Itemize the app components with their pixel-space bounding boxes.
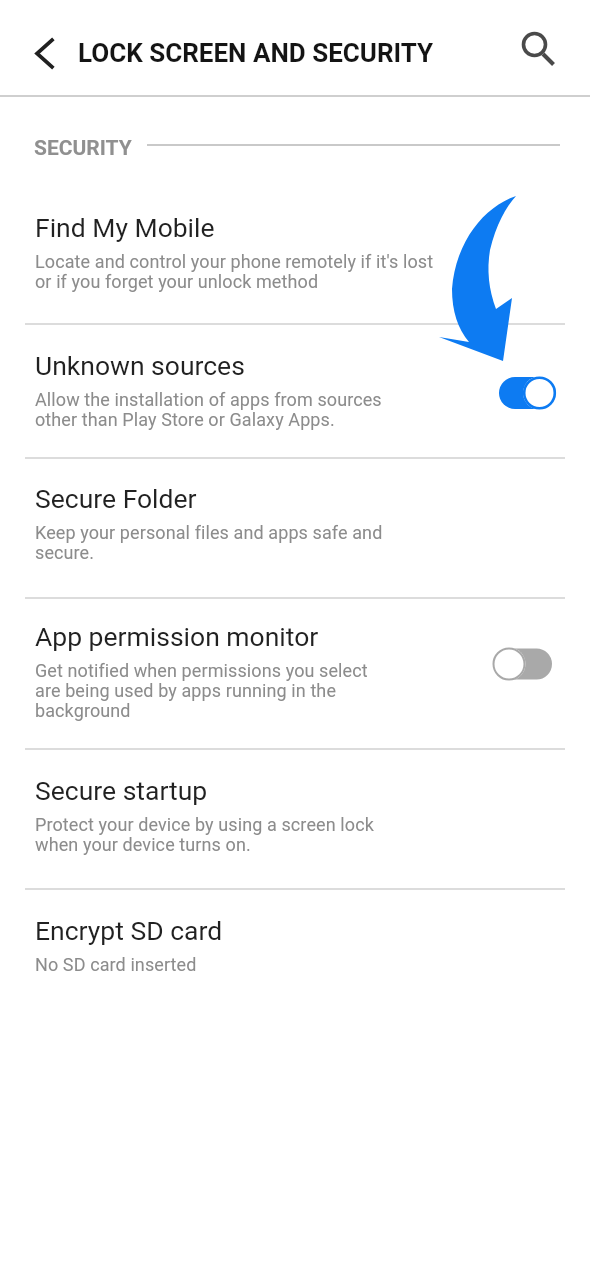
staticText: SECURITY <box>34 136 132 161</box>
button[interactable]: Find My Mobile <box>0 212 590 293</box>
button[interactable] <box>510 20 566 76</box>
staticText: Secure startup <box>35 775 208 806</box>
staticText: Unknown sources <box>35 350 245 381</box>
staticText: Allow the installation of apps from sour… <box>35 389 382 431</box>
staticText: No SD card inserted <box>35 954 197 975</box>
button[interactable]: Unknown sources <box>0 350 590 431</box>
staticText: Get notified when permissions you select… <box>35 660 368 722</box>
staticText: Keep your personal files and apps safe a… <box>35 522 383 564</box>
staticText: App permission monitor <box>35 621 319 652</box>
button[interactable] <box>492 644 557 684</box>
staticText: Find My Mobile <box>35 212 215 243</box>
button[interactable]: Encrypt SD card <box>0 915 590 975</box>
staticText: Secure Folder <box>35 483 197 514</box>
button[interactable]: Secure startup <box>0 775 590 856</box>
staticText: Protect your device by using a screen lo… <box>35 814 374 856</box>
staticText: LOCK SCREEN AND SECURITY <box>78 38 434 68</box>
button[interactable] <box>20 30 68 78</box>
button[interactable]: App permission monitor <box>0 621 590 722</box>
button[interactable]: Secure Folder <box>0 483 590 564</box>
button[interactable] <box>495 373 560 413</box>
staticText: Locate and control your phone remotely i… <box>35 251 434 293</box>
staticText: Encrypt SD card <box>35 915 223 946</box>
